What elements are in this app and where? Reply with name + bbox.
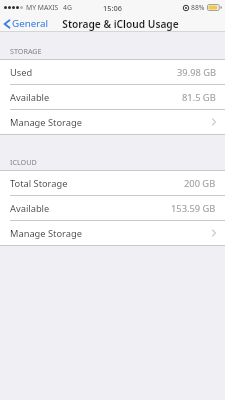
other: Manage Storage — [212, 229, 216, 237]
button[interactable]: Available — [0, 196, 225, 220]
staticText: 39.98 GB — [177, 66, 216, 79]
staticText: Manage Storage — [10, 116, 82, 129]
staticText: ICLOUD — [10, 157, 37, 167]
staticText: 153.59 GB — [171, 202, 216, 215]
button[interactable]: Used — [0, 60, 225, 84]
button[interactable]: General — [0, 15, 55, 32]
button[interactable]: Manage Storage — [0, 221, 225, 245]
staticText: Available — [10, 202, 50, 215]
button[interactable]: Available — [0, 85, 225, 109]
staticText: 15:06 — [103, 3, 122, 13]
staticText: 88% — [191, 3, 205, 12]
staticText: Manage Storage — [10, 227, 82, 240]
other: Manage Storage — [212, 118, 216, 126]
button[interactable]: Total Storage — [0, 171, 225, 195]
staticText: General — [12, 17, 49, 30]
staticText: Storage & iCloud Usage — [62, 17, 179, 31]
staticText: 200 GB — [184, 177, 216, 190]
staticText: MY MAXIS — [26, 3, 59, 12]
button[interactable]: Manage Storage — [0, 110, 225, 134]
staticText: Available — [10, 91, 50, 104]
staticText: Used — [10, 66, 33, 79]
staticText: STORAGE — [10, 46, 42, 56]
staticText: 4G — [63, 3, 72, 12]
staticText: Total Storage — [10, 177, 68, 190]
staticText: 81.5 GB — [182, 91, 216, 104]
